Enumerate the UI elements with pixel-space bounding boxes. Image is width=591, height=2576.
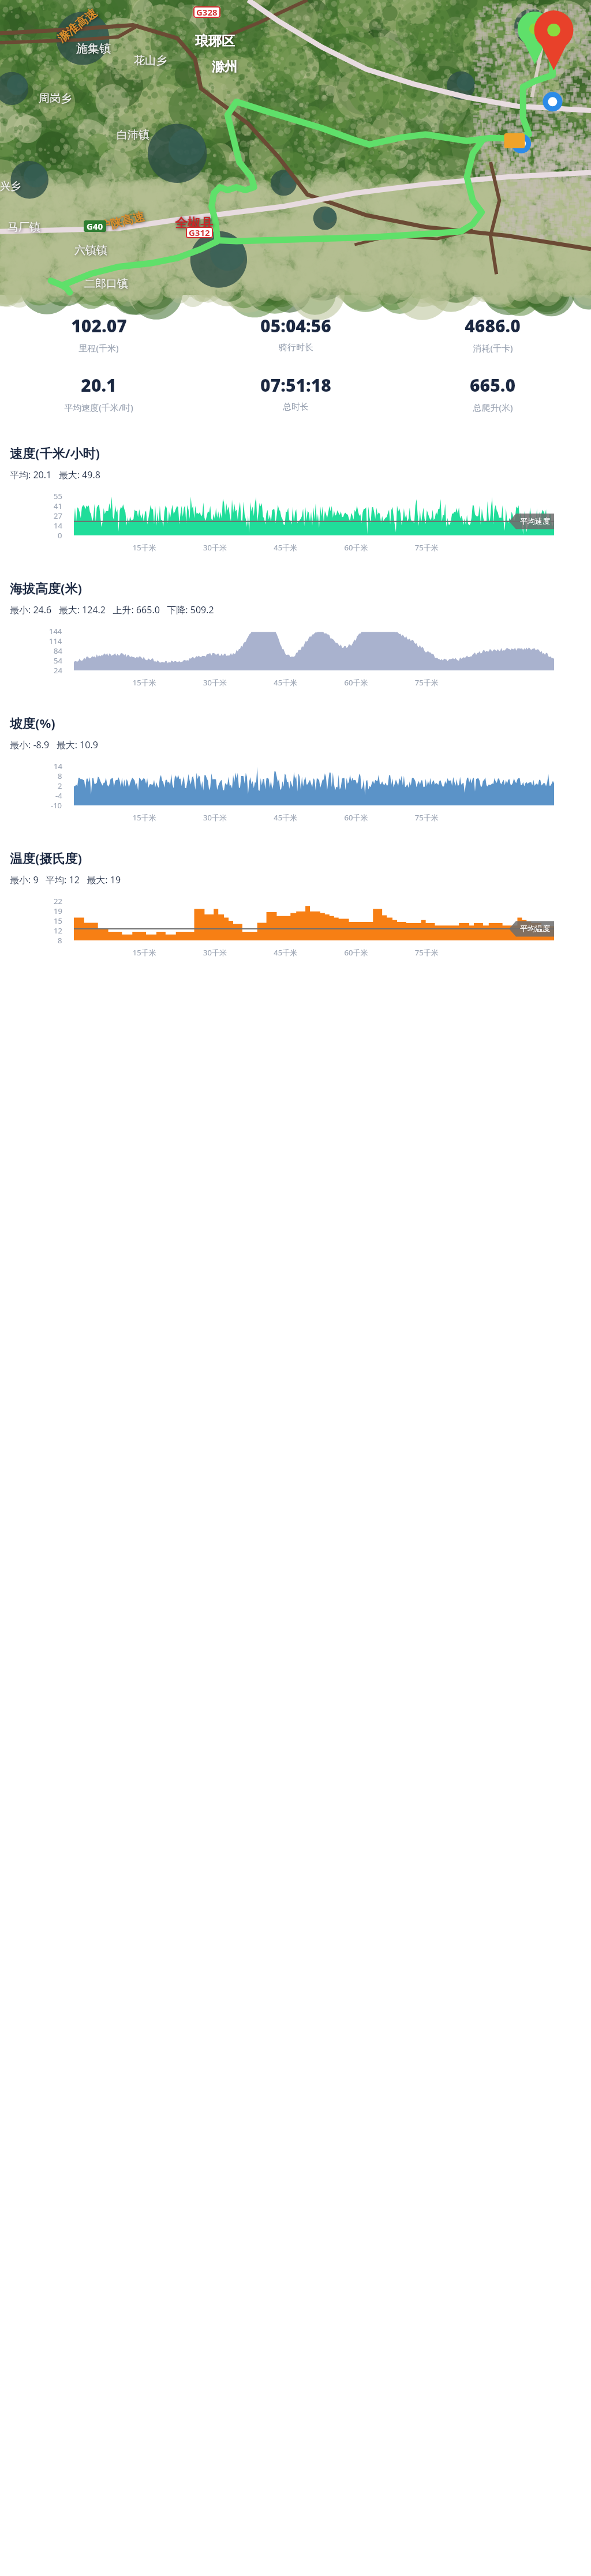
staticText: 102.07 (71, 314, 127, 338)
staticText: G40 (87, 220, 103, 232)
staticText: 施集镇 (76, 42, 111, 56)
button[interactable]: 温度(摄氏度) (0, 849, 591, 963)
staticText: 白沛镇 (117, 128, 149, 142)
staticText: 周岗乡 (39, 92, 72, 106)
button[interactable]: 102.07 (0, 313, 197, 355)
staticText: 4686.0 (465, 314, 521, 338)
button[interactable]: 速度(千米/小时) (0, 444, 591, 558)
staticText: 平均: 20.1 最大: 49.8 (10, 468, 100, 481)
staticText: 消耗(千卡) (473, 342, 513, 354)
staticText: G328 (196, 6, 218, 18)
staticText: 最小: 9 平均: 12 最大: 19 (10, 873, 121, 886)
staticText: 07:51:18 (260, 373, 331, 397)
staticText: 滁淮高速 (55, 6, 100, 46)
staticText: 总爬升(米) (473, 402, 513, 413)
staticText: 坡度(%) (10, 714, 55, 732)
staticText: 马厂镇 (8, 220, 40, 234)
staticText: 最小: 24.6 最大: 124.2 上升: 665.0 下降: 509.2 (10, 603, 214, 616)
staticText: 二郎口镇 (84, 277, 128, 291)
staticText: 骑行时长 (279, 342, 313, 353)
staticText: 里程(千米) (78, 342, 119, 354)
staticText: G312 (189, 227, 210, 238)
staticText: 兴乡 (0, 180, 21, 193)
staticText: 最小: -8.9 最大: 10.9 (10, 738, 98, 751)
staticText: 琅琊区 (195, 33, 235, 50)
button[interactable]: 4686.0 (394, 313, 591, 355)
staticText: 05:04:56 (260, 314, 331, 338)
staticText: 海拔高度(米) (10, 579, 82, 597)
button[interactable]: 05:04:56 (197, 313, 394, 354)
staticText: 六镇镇 (74, 243, 107, 257)
staticText: 平均速度(千米/时) (64, 402, 133, 413)
button[interactable]: 坡度(%) (0, 714, 591, 828)
button[interactable]: 20.1 (0, 372, 197, 414)
staticText: 花山乡 (134, 54, 167, 68)
button[interactable]: 海拔高度(米) (0, 579, 591, 693)
staticText: 20.1 (81, 373, 117, 397)
staticText: 全椒县 (175, 215, 213, 231)
staticText: 滁州 (212, 59, 237, 75)
button[interactable]: 07:51:18 (197, 372, 394, 414)
staticText: 665.0 (470, 373, 515, 397)
staticText: 速度(千米/小时) (10, 444, 100, 462)
button[interactable]: Route map (0, 0, 591, 295)
button[interactable]: 665.0 (394, 372, 591, 414)
staticText: 温度(摄氏度) (10, 849, 82, 867)
staticText: 沪陕高速 (98, 209, 146, 234)
staticText: 总时长 (283, 402, 309, 413)
